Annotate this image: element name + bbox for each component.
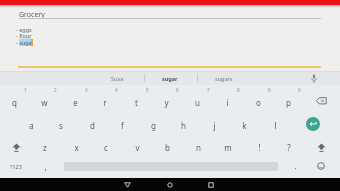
staticText: sugar [162, 75, 178, 82]
staticText: c [104, 142, 108, 153]
button[interactable] [306, 117, 320, 131]
button[interactable]: m [216, 138, 240, 156]
staticText: , [44, 161, 47, 172]
button[interactable] [208, 182, 214, 188]
staticText: m [224, 142, 232, 153]
staticText: - flour [16, 32, 32, 39]
staticText: . [294, 160, 297, 171]
button[interactable] [167, 182, 173, 188]
button[interactable] [316, 97, 327, 105]
staticText: n [196, 142, 201, 153]
staticText: b [165, 142, 170, 153]
staticText: 0 [298, 87, 301, 93]
staticText: Grocery [19, 10, 45, 20]
button[interactable] [11, 143, 22, 152]
button[interactable]: k [232, 116, 256, 134]
staticText: r [103, 97, 107, 108]
staticText: y [164, 97, 169, 108]
button[interactable]: t [124, 93, 148, 111]
button[interactable]: i [215, 93, 239, 111]
staticText: o [256, 97, 261, 108]
button[interactable]: ?123 [4, 157, 28, 175]
button[interactable]: , [33, 157, 57, 175]
staticText: ? [287, 142, 291, 153]
button[interactable] [316, 143, 327, 152]
staticText: - eggs [16, 26, 32, 33]
button[interactable]: n [186, 138, 210, 156]
button[interactable]: p [276, 93, 300, 111]
button[interactable] [317, 162, 325, 170]
button[interactable]: q [2, 93, 26, 111]
staticText: l [274, 120, 277, 131]
button[interactable]: e [63, 93, 87, 111]
button[interactable]: r [93, 93, 117, 111]
staticText: i [226, 97, 229, 108]
staticText: 6 [176, 87, 179, 93]
button[interactable]: d [80, 116, 104, 134]
staticText: j [213, 120, 216, 131]
staticText: f [121, 120, 124, 131]
button[interactable]: sugars [197, 71, 250, 85]
button[interactable]: z [33, 138, 57, 156]
staticText: k [242, 120, 247, 131]
staticText: x [74, 142, 79, 153]
button[interactable]: l [263, 116, 287, 134]
button[interactable]: f [110, 116, 134, 134]
staticText: 9 [268, 87, 271, 93]
staticText: 1 [24, 87, 27, 93]
staticText: u [195, 97, 200, 108]
staticText: q [12, 97, 17, 108]
staticText: 7 [207, 87, 210, 93]
staticText: - suga [16, 39, 32, 46]
staticText: 4 [115, 87, 118, 93]
staticText: e [73, 97, 78, 108]
staticText: 5 [146, 87, 149, 93]
button[interactable]: h [171, 116, 195, 134]
button[interactable]: ? [277, 138, 301, 156]
button[interactable]: u [185, 93, 209, 111]
staticText: s [59, 120, 63, 131]
staticText: ! [258, 142, 261, 153]
button[interactable]: o [246, 93, 270, 111]
button[interactable]: w [32, 93, 56, 111]
button[interactable] [310, 74, 318, 83]
staticText: p [286, 97, 291, 108]
button[interactable]: j [202, 116, 226, 134]
staticText: z [43, 142, 47, 153]
button[interactable]: . [283, 156, 307, 174]
staticText: sugars [215, 75, 233, 82]
button[interactable]: y [154, 93, 178, 111]
button[interactable]: x [64, 138, 88, 156]
button[interactable]: g [141, 116, 165, 134]
button[interactable]: a [19, 116, 43, 134]
staticText: v [135, 142, 140, 153]
button[interactable]: s [49, 116, 73, 134]
staticText: w [41, 97, 48, 108]
staticText: 8 [237, 87, 240, 93]
staticText: 3 [85, 87, 88, 93]
staticText: 2 [54, 87, 57, 93]
button[interactable]: sugar [144, 71, 196, 85]
staticText: d [90, 120, 95, 131]
staticText: h [181, 120, 186, 131]
staticText: g [151, 120, 156, 131]
button[interactable] [124, 182, 131, 188]
staticText: t [135, 97, 138, 108]
button[interactable]: ! [247, 138, 271, 156]
staticText: Suva [111, 75, 124, 82]
button[interactable]: c [94, 138, 118, 156]
button[interactable]: Suva [92, 71, 143, 85]
button[interactable]: v [125, 138, 149, 156]
staticText: ?123 [10, 163, 22, 170]
button[interactable]: b [155, 138, 179, 156]
staticText: a [29, 120, 34, 131]
